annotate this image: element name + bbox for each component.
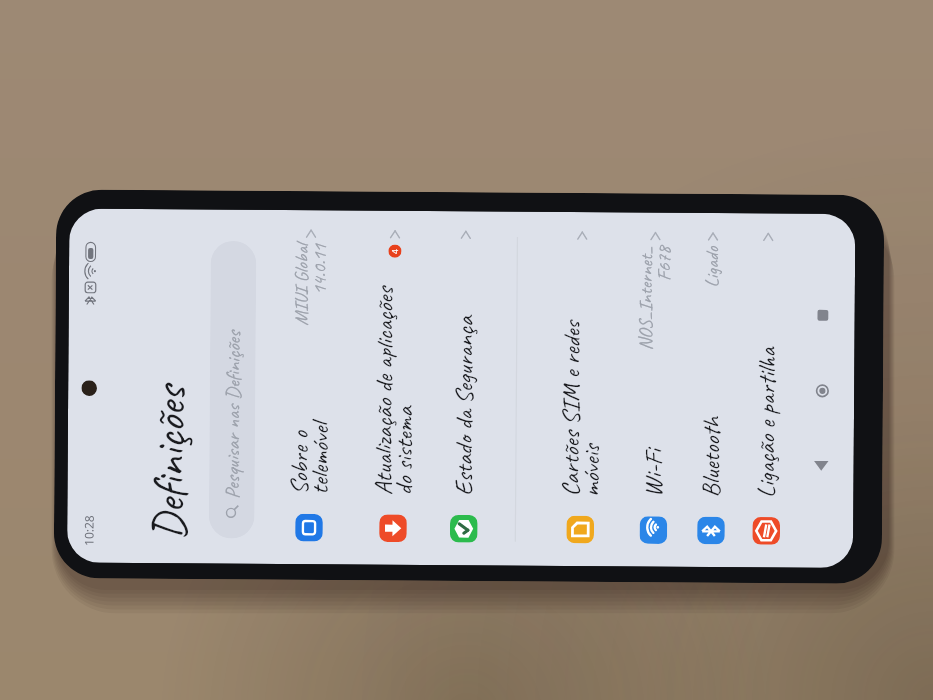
button[interactable]: Bluetooth [684,214,739,567]
staticText: 10:28 [80,515,97,546]
staticText: Ligado [700,247,724,289]
button[interactable]: Cartões SIM e redes móveis [553,213,608,566]
button[interactable]: Pesquisar nas Definições [209,241,256,539]
staticText: Sobre o telemóvel [283,326,336,495]
staticText: Wi-Fi [637,351,670,497]
button[interactable]: Ligação e partilha [739,214,794,568]
button[interactable]: Back [804,449,838,483]
staticText: Atualização de aplicações do sistema [367,257,421,495]
staticText: Ligação e partilha [750,241,783,498]
button[interactable]: Atualização de aplicações do sistema [366,212,421,565]
button[interactable]: Home [805,374,839,408]
staticText: MIUI Global 14.0.11 [289,244,332,327]
staticText: Pesquisar nas Definições [220,331,246,499]
staticText: Estado da Segurança [448,239,481,496]
staticText: Definições [140,385,199,541]
button[interactable]: Sobre o telemóvel [282,211,337,564]
staticText: Cartões SIM e redes móveis [555,240,608,497]
button[interactable]: Recent apps [805,299,839,333]
button[interactable]: Wi-Fi [626,214,681,567]
staticText: 4 [389,248,401,254]
staticText: NOS_Internet_ F678 [634,246,676,351]
button[interactable]: Estado da Segurança [436,212,492,566]
staticText: Bluetooth [695,289,728,498]
